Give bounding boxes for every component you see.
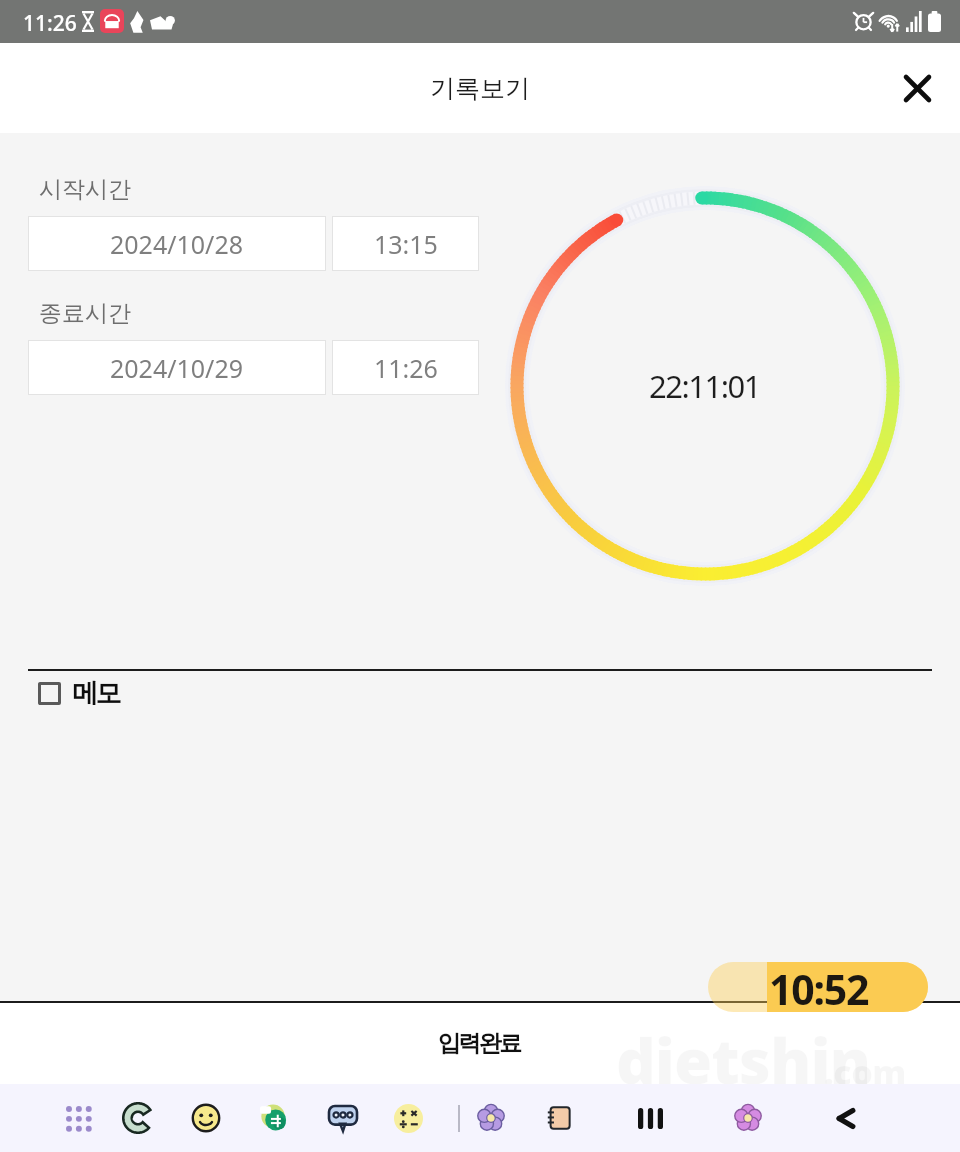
staticText: dietshin bbox=[616, 1018, 871, 1102]
button[interactable]: Close bbox=[894, 65, 940, 111]
button[interactable]: Emoji bbox=[179, 1084, 233, 1152]
button[interactable]: 11:26 bbox=[332, 340, 479, 395]
button[interactable]: Home bbox=[721, 1084, 775, 1152]
button[interactable]: 13:15 bbox=[332, 216, 479, 271]
staticText: 2024/10/29 bbox=[110, 351, 244, 385]
staticText: 메모 bbox=[74, 677, 120, 710]
staticText: .com bbox=[824, 1049, 906, 1095]
staticText: 11:26 bbox=[374, 351, 438, 385]
button[interactable]: 2024/10/29 bbox=[28, 340, 326, 395]
button[interactable]: 메모 bbox=[38, 676, 120, 710]
button[interactable]: Timer 10:52 bbox=[708, 962, 928, 1012]
staticText: 11:26 bbox=[23, 9, 77, 38]
button[interactable]: Calculator bbox=[381, 1084, 435, 1152]
button[interactable]: 2024/10/28 bbox=[28, 216, 326, 271]
button[interactable]: Pay bbox=[247, 1084, 301, 1152]
staticText: 종료시간 bbox=[39, 299, 131, 328]
button[interactable]: 입력완료 bbox=[0, 1002, 960, 1084]
staticText: 22:11:01 bbox=[649, 365, 761, 407]
button[interactable]: Flower bbox=[464, 1084, 518, 1152]
button[interactable]: Messages bbox=[316, 1084, 370, 1152]
button[interactable]: Notes bbox=[532, 1084, 586, 1152]
button[interactable]: Phone bbox=[111, 1084, 165, 1152]
staticText: 기록보기 bbox=[430, 73, 530, 104]
button[interactable]: Recents bbox=[623, 1084, 677, 1152]
button[interactable]: Back bbox=[819, 1084, 873, 1152]
staticText: 10:52 bbox=[769, 962, 869, 1011]
staticText: 2024/10/28 bbox=[110, 227, 244, 261]
staticText: 입력완료 bbox=[439, 1029, 521, 1058]
staticText: 시작시간 bbox=[39, 175, 131, 204]
button[interactable]: Apps bbox=[51, 1084, 105, 1152]
staticText: 13:15 bbox=[374, 227, 438, 261]
